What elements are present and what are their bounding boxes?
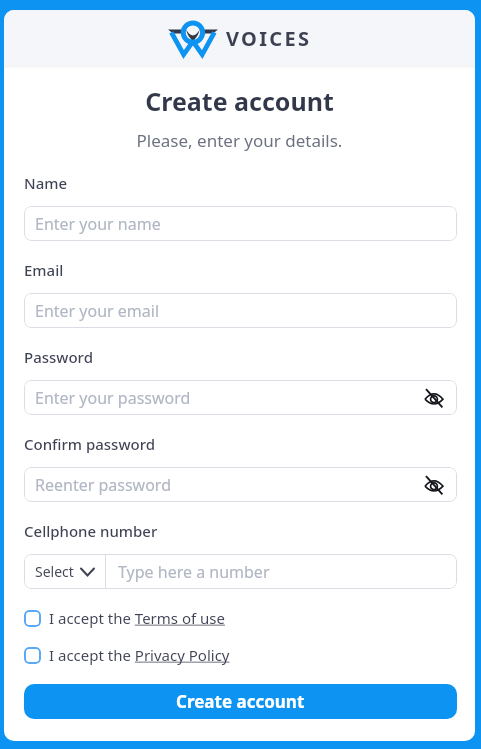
staticText: I accept the Terms of use xyxy=(49,608,225,628)
staticText: Create account xyxy=(176,690,305,713)
button[interactable]: Enter your password xyxy=(24,380,457,415)
staticText: Confirm password xyxy=(24,434,156,454)
staticText: Enter your password xyxy=(35,387,191,409)
staticText: VOICES xyxy=(226,25,312,52)
button[interactable]: I accept the Terms of use xyxy=(24,608,225,628)
button[interactable] xyxy=(424,388,444,408)
staticText: Email xyxy=(24,260,64,280)
button[interactable]: Reenter password xyxy=(24,467,457,502)
staticText: Enter your name xyxy=(35,213,161,235)
staticText: Enter your email xyxy=(35,300,160,322)
staticText: I accept the Privacy Policy xyxy=(49,645,230,665)
staticText: Create account xyxy=(4,84,475,118)
button[interactable]: Select xyxy=(24,554,105,589)
staticText: Name xyxy=(24,173,68,193)
button[interactable]: Enter your name xyxy=(24,206,457,241)
button[interactable]: Create account xyxy=(24,684,457,719)
staticText: Select xyxy=(35,562,74,581)
staticText: Cellphone number xyxy=(24,521,158,541)
staticText: Password xyxy=(24,347,93,367)
staticText: Reenter password xyxy=(35,474,171,496)
button[interactable]: Type here a number xyxy=(118,561,270,583)
button[interactable] xyxy=(424,475,444,495)
button[interactable]: I accept the Privacy Policy xyxy=(24,645,230,665)
button[interactable]: Enter your email xyxy=(24,293,457,328)
staticText: Please, enter your details. xyxy=(4,129,475,152)
